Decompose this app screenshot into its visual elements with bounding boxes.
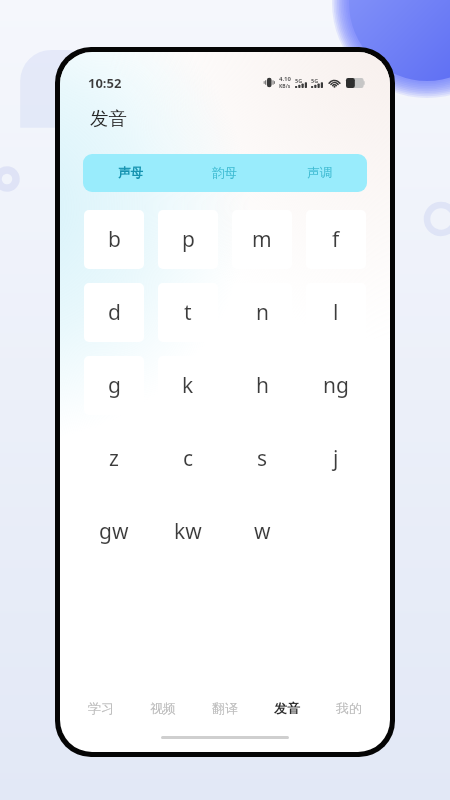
staticText: k: [182, 371, 194, 400]
button[interactable]: c: [158, 429, 218, 488]
staticText: l: [333, 298, 339, 327]
button[interactable]: s: [232, 429, 292, 488]
button[interactable]: g: [84, 356, 144, 415]
button[interactable]: gw: [84, 502, 144, 561]
staticText: w: [254, 517, 271, 546]
staticText: ng: [323, 371, 349, 400]
staticText: 10:52: [88, 74, 122, 92]
button[interactable]: l: [306, 283, 366, 342]
button[interactable]: f: [306, 210, 366, 269]
button[interactable]: t: [158, 283, 218, 342]
staticText: 声调: [307, 165, 332, 181]
button[interactable]: 发音: [274, 693, 300, 723]
button[interactable]: n: [232, 283, 292, 342]
staticText: 5G: [295, 77, 303, 84]
staticText: 韵母: [212, 165, 237, 181]
button[interactable]: j: [306, 429, 366, 488]
staticText: t: [184, 298, 192, 327]
button[interactable]: z: [84, 429, 144, 488]
staticText: 学习: [88, 700, 114, 716]
staticText: c: [183, 444, 194, 473]
button[interactable]: 学习: [88, 693, 114, 723]
staticText: j: [333, 444, 339, 473]
button[interactable]: d: [84, 283, 144, 342]
staticText: 视频: [150, 700, 176, 716]
staticText: n: [256, 298, 269, 327]
button[interactable]: 视频: [150, 693, 176, 723]
staticText: d: [108, 298, 121, 327]
button[interactable]: 韵母: [177, 154, 272, 192]
staticText: g: [108, 371, 121, 400]
button[interactable]: 翻译: [212, 693, 238, 723]
staticText: f: [332, 225, 340, 254]
staticText: z: [109, 444, 119, 473]
staticText: 发音: [274, 700, 300, 716]
button[interactable]: p: [158, 210, 218, 269]
button[interactable]: ng: [306, 356, 366, 415]
staticText: 声母: [118, 165, 143, 181]
button[interactable]: 声调: [272, 154, 367, 192]
staticText: gw: [99, 517, 129, 546]
button[interactable]: 我的: [336, 693, 362, 723]
button[interactable]: m: [232, 210, 292, 269]
staticText: KB/s: [279, 83, 291, 90]
staticText: 发音: [90, 107, 127, 130]
button[interactable]: h: [232, 356, 292, 415]
button[interactable]: 声母: [83, 154, 177, 192]
staticText: p: [182, 225, 195, 254]
button[interactable]: b: [84, 210, 144, 269]
staticText: 5G: [311, 77, 319, 84]
button[interactable]: k: [158, 356, 218, 415]
staticText: 我的: [336, 700, 362, 716]
staticText: 翻译: [212, 700, 238, 716]
staticText: 4.10: [279, 75, 291, 83]
staticText: b: [108, 225, 121, 254]
staticText: m: [252, 225, 272, 254]
button[interactable]: kw: [158, 502, 218, 561]
staticText: h: [256, 371, 269, 400]
staticText: s: [257, 444, 268, 473]
button[interactable]: w: [232, 502, 292, 561]
staticText: kw: [174, 517, 202, 546]
